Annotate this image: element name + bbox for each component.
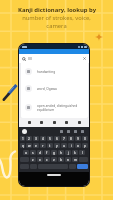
staticText: n: [67, 158, 69, 162]
button[interactable]: Keyboard tool 3: [80, 129, 84, 133]
button[interactable]: 4: [40, 136, 46, 141]
staticText: m: [74, 158, 77, 162]
button[interactable]: Enter: [77, 164, 88, 169]
button[interactable]: w: [26, 143, 32, 148]
button[interactable]: handwriting: [21, 63, 88, 80]
staticText: o: [77, 144, 79, 148]
staticText: 5: [49, 137, 51, 141]
staticText: u: [63, 144, 65, 148]
staticText: v: [53, 158, 55, 162]
staticText: 6: [56, 137, 58, 141]
button[interactable]: Keyboard tool 1: [66, 129, 70, 133]
button[interactable]: Tool 0: [27, 120, 32, 125]
staticText: f: [46, 151, 48, 155]
button[interactable]: Tool 3: [64, 120, 69, 125]
staticText: k: [74, 151, 76, 155]
button[interactable]: p: [82, 143, 88, 148]
staticText: b: [60, 158, 62, 162]
button[interactable]: v: [51, 157, 57, 162]
button[interactable]: g: [51, 150, 57, 155]
button[interactable]: i: [68, 143, 74, 148]
staticText: equilibrium: [37, 108, 55, 112]
staticText: x: [39, 158, 41, 162]
button[interactable]: Search: [19, 54, 89, 63]
staticText: h: [60, 151, 62, 155]
button[interactable]: t: [47, 143, 53, 148]
button[interactable]: Keyboard tool 2: [73, 129, 77, 133]
staticText: 1: [22, 137, 24, 141]
button[interactable]: Tool 1: [39, 120, 44, 125]
staticText: 4: [42, 137, 44, 141]
staticText: handwriting: [37, 70, 56, 74]
button[interactable]: 7: [61, 136, 67, 141]
staticText: y: [56, 144, 58, 148]
staticText: z: [32, 158, 34, 162]
button[interactable]: open-ended, distinguished: [21, 97, 88, 118]
staticText: g: [53, 151, 55, 155]
button[interactable]: f: [44, 150, 50, 155]
button[interactable]: a: [23, 150, 29, 155]
staticText: Kanji dictionary, lookup by: [18, 6, 96, 14]
other: Search: [22, 57, 26, 61]
button[interactable]: x: [37, 157, 43, 162]
staticText: w: [28, 144, 31, 148]
staticText: s: [32, 151, 34, 155]
staticText: open-ended, distinguished: [37, 104, 78, 108]
button[interactable]: y: [54, 143, 60, 148]
staticText: c: [46, 158, 48, 162]
staticText: 8: [70, 137, 72, 141]
staticText: q: [22, 144, 24, 148]
staticText: j: [68, 151, 69, 155]
button[interactable]: 9: [75, 136, 81, 141]
button[interactable]: l: [79, 150, 85, 155]
staticText: a: [25, 151, 27, 155]
button[interactable]: r: [40, 143, 46, 148]
staticText: i: [71, 144, 72, 148]
staticText: l: [82, 151, 83, 155]
button[interactable]: c: [44, 157, 50, 162]
button[interactable]: Tool 2: [52, 120, 57, 125]
staticText: 9: [77, 137, 79, 141]
button[interactable]: 5: [47, 136, 53, 141]
button[interactable]: o: [75, 143, 81, 148]
staticText: 2: [28, 137, 30, 141]
button[interactable]: h: [58, 150, 64, 155]
button[interactable]: Tool 4: [77, 120, 82, 125]
button[interactable]: 1: [20, 136, 25, 141]
button[interactable]: 2: [26, 136, 32, 141]
button[interactable]: 8: [68, 136, 74, 141]
button[interactable]: q: [20, 143, 25, 148]
button[interactable]: z: [30, 157, 36, 162]
button[interactable]: 6: [54, 136, 60, 141]
button[interactable]: 0: [82, 136, 88, 141]
button[interactable]: j: [65, 150, 71, 155]
button[interactable]: u: [61, 143, 67, 148]
staticText: number of strokes, voice, camera: [22, 14, 91, 30]
button[interactable]: Google: [22, 129, 27, 134]
staticText: p: [84, 144, 86, 148]
staticText: e: [35, 144, 37, 148]
button[interactable]: d: [37, 150, 43, 155]
button[interactable]: 3: [33, 136, 39, 141]
staticText: r: [42, 144, 44, 148]
button[interactable]: e: [33, 143, 39, 148]
button[interactable]: Keyboard tool 0: [59, 129, 63, 133]
button[interactable]: b: [58, 157, 64, 162]
button[interactable]: m: [72, 157, 78, 162]
button[interactable]: word, Ogawa: [21, 80, 88, 97]
staticText: t: [49, 144, 51, 148]
button[interactable]: n: [65, 157, 71, 162]
staticText: word, Ogawa: [37, 87, 57, 91]
button[interactable]: s: [30, 150, 36, 155]
staticText: 0: [84, 137, 86, 141]
button[interactable]: k: [72, 150, 78, 155]
staticText: d: [39, 151, 41, 155]
staticText: 7: [63, 137, 65, 141]
staticText: 3: [35, 137, 37, 141]
